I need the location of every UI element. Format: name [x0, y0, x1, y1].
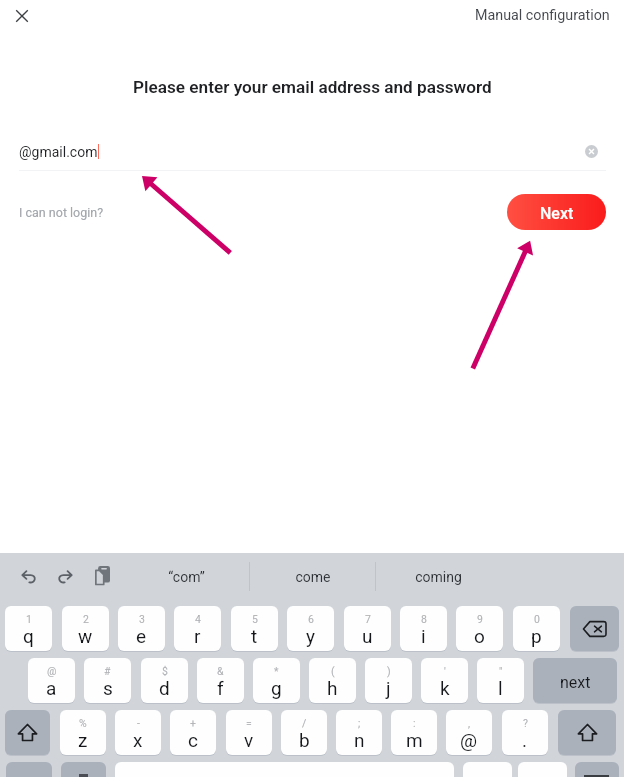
- button[interactable]: 7: [344, 606, 391, 651]
- button[interactable]: +: [170, 710, 216, 755]
- staticText: g: [271, 677, 282, 699]
- button[interactable]: @: [28, 658, 75, 703]
- button[interactable]: 5: [231, 606, 278, 651]
- staticText: c: [188, 729, 198, 751]
- staticText: d: [159, 677, 170, 699]
- staticText: 6: [308, 613, 314, 625]
- button[interactable]: Backspace: [570, 606, 619, 651]
- button[interactable]: Emoji: [61, 762, 106, 777]
- staticText: 7: [365, 613, 371, 625]
- button[interactable]: 0: [513, 606, 560, 651]
- button[interactable]: -: [115, 710, 161, 755]
- staticText: ;: [358, 717, 361, 729]
- button[interactable]: $: [141, 658, 188, 703]
- staticText: coming: [415, 569, 462, 585]
- staticText: 3: [139, 613, 145, 625]
- button[interactable]: 1: [5, 606, 52, 651]
- button[interactable]: Clipboard: [87, 560, 116, 592]
- button[interactable]: Enter: [575, 762, 619, 777]
- button[interactable]: Close: [10, 4, 34, 28]
- button[interactable]: 4: [174, 606, 221, 651]
- button[interactable]: /: [281, 710, 327, 755]
- staticText: ": [499, 665, 503, 677]
- button[interactable]: ): [365, 658, 412, 703]
- staticText: i: [421, 625, 426, 647]
- button[interactable]: 6: [287, 606, 334, 651]
- button[interactable]: %: [60, 710, 106, 755]
- button[interactable]: ;: [336, 710, 382, 755]
- button[interactable]: coming: [376, 562, 501, 591]
- button[interactable]: Comma: [463, 762, 512, 777]
- staticText: next: [560, 673, 591, 692]
- staticText: “com”: [168, 569, 205, 585]
- staticText: (: [331, 665, 335, 677]
- button[interactable]: #: [84, 658, 131, 703]
- staticText: ?: [523, 717, 528, 729]
- button[interactable]: 2: [62, 606, 109, 651]
- button[interactable]: Undo: [15, 562, 43, 590]
- staticText: @: [47, 665, 57, 677]
- staticText: e: [136, 625, 147, 647]
- staticText: a: [46, 677, 57, 699]
- button[interactable]: Next: [507, 194, 606, 230]
- staticText: ,: [468, 717, 471, 729]
- staticText: 1: [26, 613, 32, 625]
- staticText: 5: [252, 613, 258, 625]
- staticText: ): [387, 665, 391, 677]
- button[interactable]: ': [421, 658, 468, 703]
- staticText: t: [251, 625, 258, 647]
- button[interactable]: “com”: [124, 562, 249, 591]
- staticText: 8: [421, 613, 427, 625]
- staticText: %: [79, 717, 87, 729]
- staticText: Next: [540, 204, 574, 223]
- button[interactable]: Symbols: [6, 762, 52, 777]
- button[interactable]: Shift: [5, 710, 50, 755]
- staticText: q: [23, 625, 34, 647]
- button[interactable]: Redo: [51, 562, 79, 590]
- button[interactable]: next: [533, 658, 617, 703]
- staticText: x: [133, 729, 143, 751]
- staticText: +: [190, 717, 196, 729]
- staticText: *: [274, 665, 279, 677]
- staticText: o: [474, 625, 485, 647]
- staticText: 9: [477, 613, 483, 625]
- staticText: w: [78, 625, 93, 647]
- staticText: k: [440, 677, 450, 699]
- staticText: 4: [195, 613, 201, 625]
- button[interactable]: Period: [518, 762, 567, 777]
- staticText: 0: [534, 613, 540, 625]
- button[interactable]: &: [197, 658, 244, 703]
- button[interactable]: ": [477, 658, 524, 703]
- staticText: n: [354, 729, 365, 751]
- button[interactable]: =: [226, 710, 272, 755]
- button[interactable]: I can not login?: [5, 201, 118, 224]
- button[interactable]: Clear text: [578, 139, 604, 164]
- staticText: @: [460, 729, 478, 751]
- staticText: =: [246, 717, 252, 729]
- staticText: come: [295, 569, 331, 585]
- button[interactable]: ,: [446, 710, 492, 755]
- staticText: v: [244, 729, 254, 751]
- staticText: :: [413, 717, 416, 729]
- staticText: s: [103, 677, 113, 699]
- button[interactable]: Shift: [558, 710, 616, 755]
- staticText: Manual configuration: [475, 7, 610, 24]
- button[interactable]: 8: [400, 606, 447, 651]
- button[interactable]: come: [250, 562, 375, 591]
- staticText: &: [217, 665, 224, 677]
- staticText: y: [306, 625, 315, 647]
- button[interactable]: 9: [456, 606, 503, 651]
- staticText: /: [302, 717, 307, 729]
- staticText: h: [327, 677, 338, 699]
- button[interactable]: 3: [118, 606, 165, 651]
- staticText: r: [194, 625, 201, 647]
- staticText: m: [406, 729, 423, 751]
- button[interactable]: *: [253, 658, 300, 703]
- button[interactable]: Manual configuration: [463, 2, 622, 29]
- button[interactable]: (: [309, 658, 356, 703]
- staticText: z: [78, 729, 88, 751]
- button[interactable]: ?: [502, 710, 548, 755]
- staticText: 2: [83, 613, 89, 625]
- button[interactable]: :: [391, 710, 437, 755]
